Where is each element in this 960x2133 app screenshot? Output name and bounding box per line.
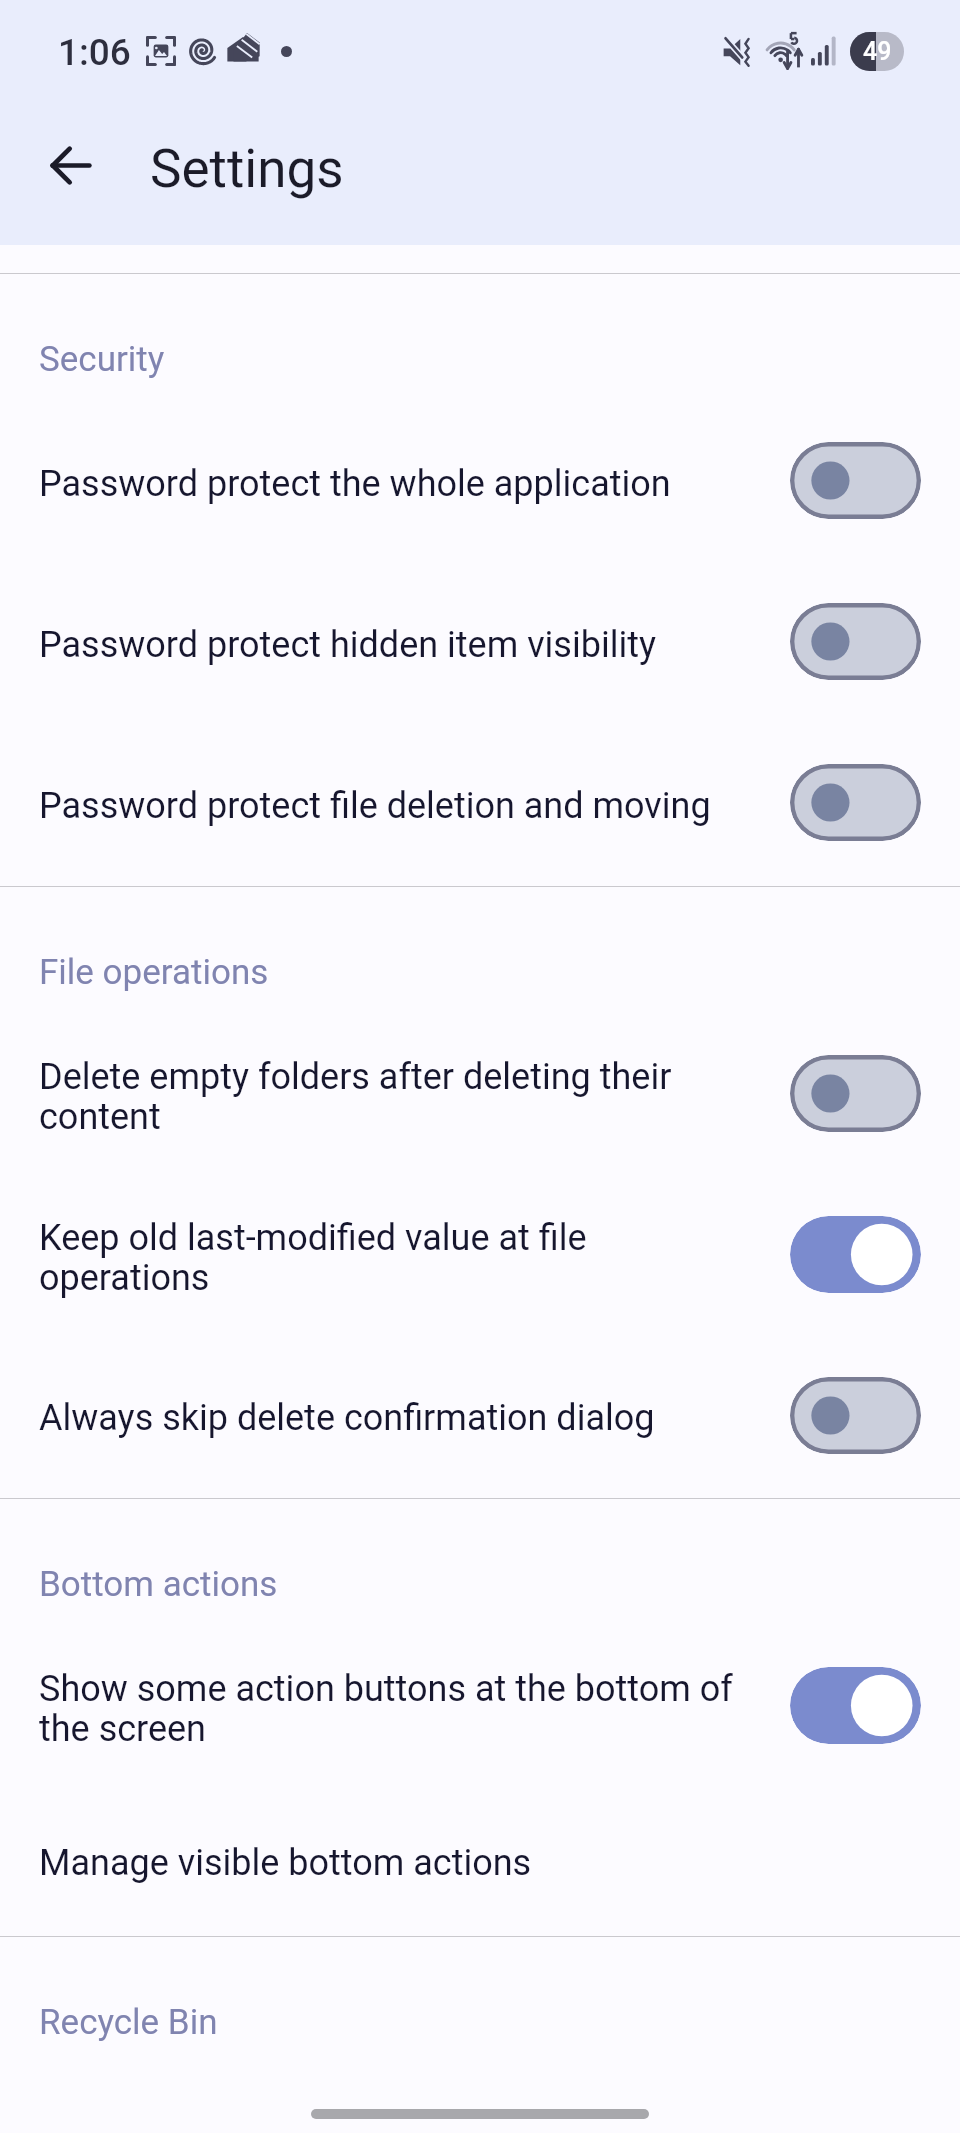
staticText: Password protect the whole application [39,464,671,504]
staticText: Password protect file deletion and movin… [39,786,711,826]
staticText: Show some action buttons at the bottom o… [39,1669,750,1749]
button[interactable]: Show some action buttons at the bottom o… [0,1628,960,1789]
staticText: Settings [150,138,344,200]
staticText: 49 [863,37,892,66]
staticText: Manage visible bottom actions [39,1843,532,1883]
button[interactable]: On [790,1667,921,1744]
staticText: Password protect hidden item visibility [39,625,656,665]
staticText: Bottom actions [39,1564,278,1605]
staticText: Security [39,339,165,380]
button[interactable]: Off [790,442,921,519]
button[interactable]: Password protect file deletion and movin… [0,725,960,886]
button[interactable]: On [790,1216,921,1293]
staticText: Recycle Bin [39,2002,218,2043]
button[interactable]: Always skip delete confirmation dialog [0,1338,960,1498]
button[interactable]: Keep old last-modified value at file ope… [0,1177,960,1338]
staticText: Delete empty folders after deleting thei… [39,1057,750,1137]
button[interactable]: Delete empty folders after deleting thei… [0,1016,960,1177]
button[interactable]: Password protect hidden item visibility [0,564,960,725]
button[interactable]: Password protect the whole application [0,403,960,564]
staticText: Always skip delete confirmation dialog [39,1398,655,1438]
staticText: File operations [39,952,269,993]
button[interactable]: Manage visible bottom actions [0,1789,960,1936]
button[interactable]: Off [790,1377,921,1454]
button[interactable]: Back [22,120,119,217]
button[interactable]: Off [790,603,921,680]
button[interactable]: Off [790,1055,921,1132]
staticText: Keep old last-modified value at file ope… [39,1218,750,1298]
staticText: 1:06 [58,31,131,74]
button[interactable]: Off [790,764,921,841]
